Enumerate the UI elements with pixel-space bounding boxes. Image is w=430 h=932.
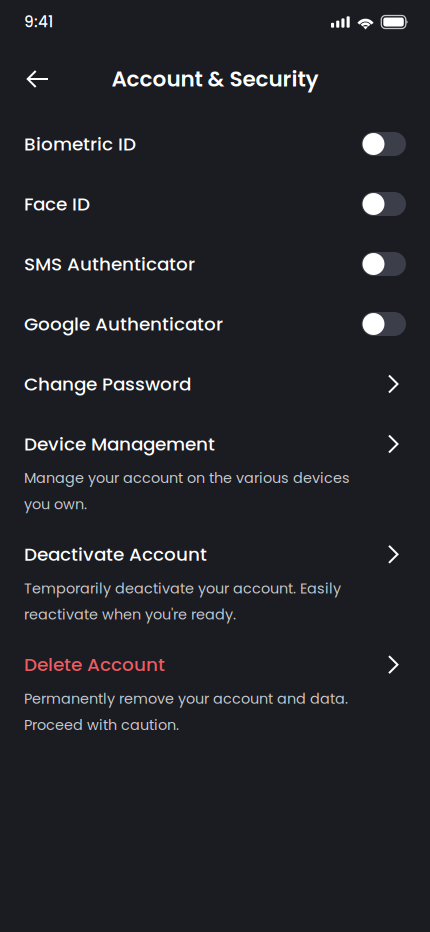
button[interactable]: Biometric ID	[0, 114, 430, 174]
staticText: SMS Authenticator	[24, 251, 195, 277]
staticText: Change Password	[24, 371, 191, 397]
staticText: Deactivate Account	[24, 541, 207, 567]
staticText: Face ID	[24, 191, 90, 217]
staticText: reactivate when you're ready.	[24, 604, 236, 625]
button[interactable]: SMS Authenticator	[0, 234, 430, 294]
staticText: Temporarily deactivate your account. Eas…	[24, 578, 341, 598]
staticText: Account & Security	[111, 64, 318, 94]
button[interactable]: Face ID	[0, 174, 430, 234]
button[interactable]: Delete Account	[0, 635, 430, 745]
staticText: Biometric ID	[24, 131, 136, 157]
staticText: Device Management	[24, 431, 215, 457]
button[interactable]: Change Password	[0, 354, 430, 414]
staticText: 9:41	[24, 11, 53, 33]
button[interactable]: Google Authenticator	[0, 294, 430, 354]
staticText: Proceed with caution.	[24, 715, 179, 735]
button[interactable]: Device Management	[0, 414, 430, 524]
staticText: you own.	[24, 494, 87, 514]
staticText: Permanently remove your account and data…	[24, 689, 348, 709]
staticText: Manage your account on the various devic…	[24, 468, 350, 488]
button[interactable]: Deactivate Account	[0, 524, 430, 635]
button[interactable]: Back	[16, 57, 60, 101]
staticText: Delete Account	[24, 652, 165, 678]
staticText: Google Authenticator	[24, 311, 223, 337]
